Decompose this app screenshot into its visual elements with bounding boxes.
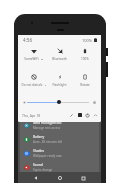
button[interactable]: Collapse (93, 113, 98, 118)
staticText: 100% (81, 57, 89, 61)
staticText: Manage nest access (33, 126, 61, 130)
button[interactable]: User (78, 113, 82, 117)
button[interactable]: Auto brightness (93, 101, 96, 104)
button[interactable]: Do not disturb (21, 74, 46, 98)
staticText: 100% (82, 38, 93, 43)
button[interactable]: Bluetooth (46, 48, 72, 72)
button[interactable]: Power (85, 113, 90, 118)
staticText: Rotate (80, 83, 90, 87)
button[interactable]: 100% (72, 48, 98, 72)
button[interactable]: Recents (78, 173, 88, 183)
staticText: SomeWiFi (24, 57, 39, 61)
button[interactable]: Brightness (23, 101, 26, 104)
staticText: Shades (33, 149, 44, 153)
button[interactable]: Nest management (24, 118, 96, 132)
button[interactable]: Home (55, 173, 65, 183)
button[interactable]: SomeWiFi (21, 48, 46, 72)
staticText: Auto - 48 minutes left (33, 140, 63, 144)
button[interactable]: Flashlight (46, 74, 72, 98)
staticText: Flashlight (52, 83, 67, 87)
staticText: Tap to change (33, 168, 53, 172)
button[interactable]: Back (31, 173, 41, 183)
button[interactable]: Rotate (72, 74, 98, 98)
staticText: Thu, Apr 18 (22, 113, 41, 118)
button[interactable]: Sound (24, 160, 96, 174)
staticText: Wallpaper ready now (33, 154, 62, 158)
staticText: Do not disturb (21, 83, 43, 87)
button[interactable]: Battery (24, 132, 96, 146)
button[interactable]: Edit (69, 113, 74, 118)
staticText: 4:56 (23, 37, 33, 43)
staticText: Nest management (33, 121, 62, 125)
button[interactable]: Shades (24, 146, 96, 160)
staticText: Battery (33, 135, 45, 139)
staticText: Sound (33, 163, 43, 167)
staticText: Bluetooth (52, 57, 67, 61)
